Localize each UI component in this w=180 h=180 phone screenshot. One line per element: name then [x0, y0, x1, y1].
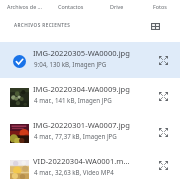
staticText: 4 mar., 77,37 kB, Imagen JPG [34, 132, 117, 140]
button[interactable]: Expand [150, 119, 176, 145]
staticText: IMG-20220304-WA0009.jpg [33, 84, 130, 94]
button[interactable]: Drive [94, 0, 140, 13]
button[interactable]: Grid view [147, 18, 164, 35]
button[interactable]: Expand [150, 47, 176, 73]
button[interactable]: Contactos [48, 0, 94, 13]
button[interactable]: Fotos [140, 0, 180, 13]
button[interactable]: IMG-20220304-WA0009.jpg [0, 78, 180, 114]
staticText: Drive [110, 3, 124, 10]
button[interactable]: Expand [150, 152, 176, 178]
staticText: IMG-20220301-WA0007.jpg [33, 120, 130, 130]
staticText: VID-20220304-WA0001.m... [33, 156, 130, 166]
staticText: 4 mar., 141 kB, Imagen JPG [34, 96, 112, 104]
staticText: Fotos [153, 3, 167, 10]
staticText: ARCHIVOS RECIENTES [14, 22, 71, 28]
staticText: IMG-20220305-WA0000.jpg [33, 48, 130, 58]
button[interactable]: IMG-20220305-WA0000.jpg [0, 42, 180, 78]
staticText: Archivos de ... [7, 3, 42, 10]
staticText: 4 mar., 32,63 kB, Video MP4 [34, 168, 114, 176]
button[interactable]: Archivos de ... [0, 0, 48, 13]
button[interactable]: IMG-20220301-WA0007.jpg [0, 114, 180, 150]
button[interactable]: VID-20220304-WA0001.m... [0, 150, 180, 180]
staticText: 9:04, 130 kB, Imagen JPG [34, 60, 107, 68]
staticText: Contactos [58, 3, 84, 10]
button[interactable]: Expand [150, 83, 176, 109]
